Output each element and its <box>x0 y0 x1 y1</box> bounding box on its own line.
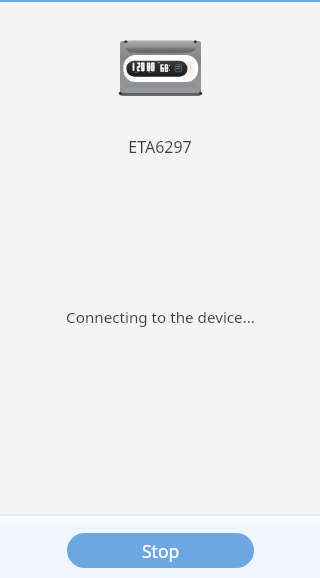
staticText: Stop <box>142 539 180 563</box>
button[interactable]: Stop <box>67 533 254 568</box>
staticText: Connecting to the device... <box>66 307 255 328</box>
staticText: ETA6297 <box>128 136 192 158</box>
